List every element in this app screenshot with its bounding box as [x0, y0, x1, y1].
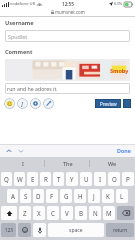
staticText: B [79, 209, 84, 217]
button[interactable]: run and he adores it. [5, 83, 130, 94]
button[interactable]: I [0, 157, 45, 170]
button[interactable]: The [45, 157, 90, 170]
staticText: C [51, 209, 55, 217]
button[interactable]: J [88, 189, 100, 203]
button[interactable]: X [33, 206, 45, 220]
staticText: space [69, 227, 83, 234]
staticText: U [84, 175, 89, 183]
staticText: Z [23, 209, 27, 217]
staticText: D [36, 192, 41, 200]
button[interactable]: G [60, 189, 72, 203]
staticText: Smoby [110, 67, 129, 74]
button[interactable]: We [90, 157, 135, 170]
button[interactable]: Previous field [4, 146, 13, 155]
button[interactable]: H [74, 189, 86, 203]
staticText: V [65, 209, 69, 217]
button[interactable]: Insert link [30, 98, 41, 109]
staticText: return [113, 227, 128, 234]
button[interactable]: Backspace [117, 206, 134, 220]
staticText: M [106, 209, 112, 217]
button[interactable]: I [94, 172, 106, 186]
button[interactable]: space [48, 223, 104, 237]
staticText: O [112, 175, 117, 183]
staticText: K [106, 192, 110, 200]
button[interactable]: A [7, 189, 18, 203]
staticText: T [57, 175, 61, 183]
button[interactable]: Shift [1, 206, 17, 220]
staticText: The [63, 160, 73, 168]
staticText: I [21, 100, 24, 108]
staticText: P [126, 175, 130, 183]
button[interactable]: Z [19, 206, 31, 220]
staticText: 123 [5, 227, 13, 233]
button[interactable]: Emoji keyboard [18, 223, 31, 237]
button[interactable]: M [103, 206, 115, 220]
staticText: L [120, 192, 124, 200]
staticText: Comment [5, 48, 33, 56]
button[interactable]: U [80, 172, 92, 186]
staticText: Q [4, 175, 9, 183]
button[interactable]: R [40, 172, 51, 186]
button[interactable]: O [108, 172, 120, 186]
button[interactable]: S [20, 189, 31, 203]
staticText: 63% [114, 1, 123, 7]
button[interactable]: Done [117, 147, 131, 154]
staticText: Preview [100, 101, 117, 107]
button[interactable]: L [116, 189, 128, 203]
button[interactable]: D [33, 189, 44, 203]
button[interactable]: Post [123, 99, 131, 108]
button[interactable]: Attach file [43, 98, 54, 109]
staticText: F [50, 192, 54, 200]
staticText: 12:55 [62, 1, 74, 7]
staticText: J [93, 192, 95, 200]
button[interactable]: F [46, 189, 58, 203]
staticText: A [11, 192, 15, 200]
staticText: X [37, 209, 41, 217]
button[interactable]: Q [1, 172, 12, 186]
staticText: Spudlet [8, 33, 28, 40]
staticText: W [17, 175, 23, 183]
button[interactable]: K [102, 189, 114, 203]
staticText: G [64, 192, 69, 200]
staticText: We [108, 160, 117, 168]
button[interactable]: Spudlet [5, 30, 130, 42]
button[interactable]: Next field [16, 146, 25, 155]
staticText: Y [70, 175, 74, 183]
staticText: N [93, 209, 98, 217]
staticText: I [22, 160, 24, 168]
button[interactable]: return [106, 223, 134, 237]
staticText: R [44, 175, 48, 183]
button[interactable]: T [53, 172, 64, 186]
staticText: H [78, 192, 83, 200]
button[interactable]: Preview [95, 99, 121, 108]
staticText: Done [117, 147, 131, 154]
staticText: run and he adores it. [7, 85, 58, 92]
staticText: mumsnet.com [55, 9, 85, 15]
staticText: S [24, 192, 28, 200]
button[interactable]: C [47, 206, 59, 220]
button[interactable]: N [89, 206, 101, 220]
button[interactable]: Y [66, 172, 78, 186]
button[interactable]: 123 [1, 223, 16, 237]
button[interactable]: V [61, 206, 73, 220]
staticText: I [99, 175, 102, 183]
button[interactable]: Dictation [33, 223, 46, 237]
staticText: E [31, 175, 35, 183]
button[interactable]: P [122, 172, 134, 186]
button[interactable]: Insert emoji [4, 98, 15, 109]
button[interactable]: Italic [17, 98, 28, 109]
button[interactable]: B [75, 206, 87, 220]
button[interactable]: W [14, 172, 25, 186]
button[interactable]: E [27, 172, 38, 186]
staticText: vodafone UK [10, 1, 36, 7]
button[interactable]: Advertisement [5, 59, 130, 81]
staticText: Username [5, 19, 34, 27]
